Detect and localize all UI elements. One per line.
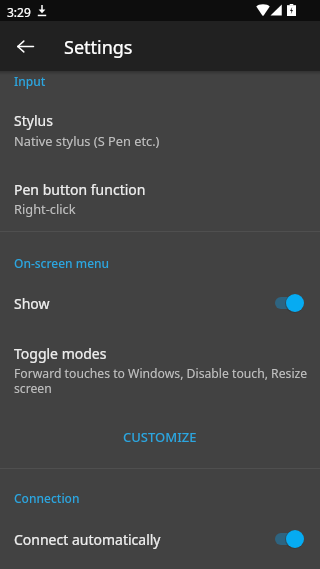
button[interactable]: CUSTOMIZE	[107, 420, 213, 454]
staticText: Show	[14, 294, 50, 313]
staticText: 3:29	[7, 4, 31, 20]
button[interactable]: Show toggle, on	[271, 288, 307, 318]
staticText: Settings	[64, 35, 133, 60]
staticText: Forward touches to Windows, Disable touc…	[14, 365, 316, 396]
staticText: Native stylus (S Pen etc.)	[14, 132, 316, 149]
staticText: Stylus	[14, 111, 53, 130]
button[interactable]: Connect automatically toggle, on	[271, 524, 307, 554]
staticText: Toggle modes	[14, 344, 107, 363]
button[interactable]: Navigate up	[9, 30, 41, 62]
button[interactable]: Stylus	[0, 101, 320, 153]
button[interactable]: Toggle modes	[0, 334, 320, 404]
staticText: Connection	[14, 490, 80, 506]
staticText: On-screen menu	[14, 255, 110, 271]
staticText: Input	[14, 73, 46, 89]
staticText: CUSTOMIZE	[123, 428, 197, 446]
button[interactable]: Connect automatically	[0, 517, 320, 561]
staticText: Right-click	[14, 200, 316, 217]
button[interactable]: Pen button function	[0, 170, 320, 222]
staticText: Connect automatically	[14, 530, 161, 549]
staticText: Pen button function	[14, 180, 146, 199]
button[interactable]: Show	[0, 281, 320, 325]
